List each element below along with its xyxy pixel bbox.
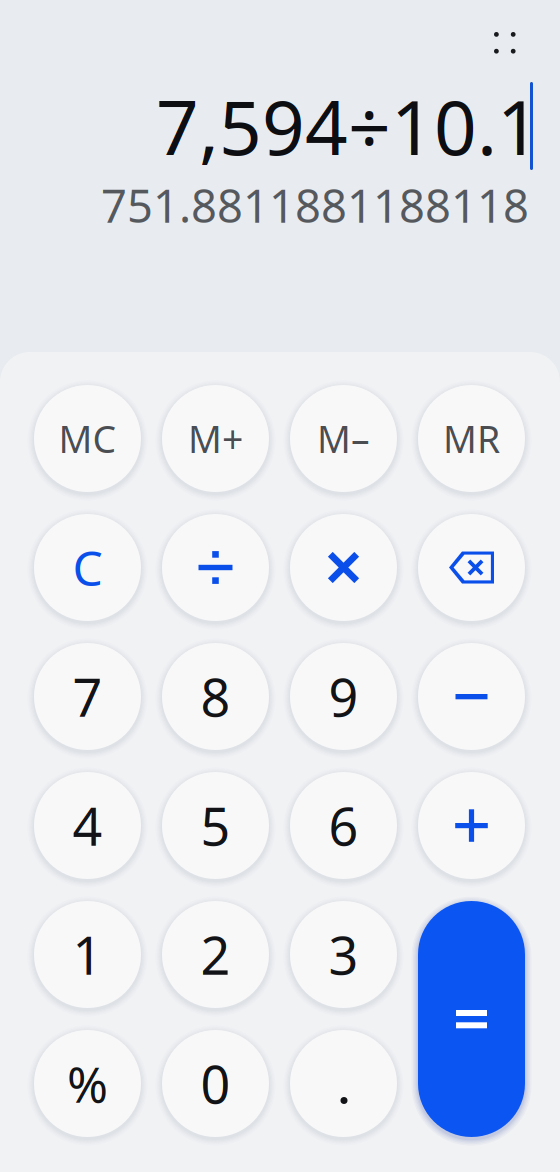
staticText: 3 — [328, 920, 358, 989]
button[interactable]: 8 — [162, 643, 269, 750]
staticText: 8 — [200, 662, 230, 731]
staticText: C — [72, 536, 102, 599]
staticText: 4 — [72, 791, 102, 860]
button[interactable]: 9 — [290, 643, 397, 750]
button[interactable]: 5 — [162, 772, 269, 879]
button[interactable]: Backspace — [418, 514, 525, 621]
button[interactable]: MC — [34, 385, 141, 492]
button[interactable]: 7 — [34, 643, 141, 750]
button[interactable]: C — [34, 514, 141, 621]
staticText: % — [67, 1051, 108, 1116]
button[interactable]: Equals — [418, 901, 525, 1137]
staticText: MC — [58, 414, 116, 463]
button[interactable]: % — [34, 1030, 141, 1137]
button[interactable]: Divide — [162, 514, 269, 621]
button[interactable]: History — [483, 21, 527, 65]
staticText: 1 — [72, 920, 102, 989]
button[interactable]: 2 — [162, 901, 269, 1008]
button[interactable]: Decimal point — [290, 1030, 397, 1137]
staticText: 9 — [328, 662, 358, 731]
button[interactable]: 0 — [162, 1030, 269, 1137]
button[interactable]: 6 — [290, 772, 397, 879]
button[interactable]: Plus — [418, 772, 525, 879]
staticText: 2 — [200, 920, 230, 989]
button[interactable]: MR — [418, 385, 525, 492]
button[interactable]: 3 — [290, 901, 397, 1008]
button[interactable]: 4 — [34, 772, 141, 879]
staticText: M+ — [188, 414, 243, 463]
staticText: 0 — [200, 1049, 230, 1118]
button[interactable]: M+ — [162, 385, 269, 492]
staticText: 5 — [200, 791, 230, 860]
staticText: 7,594÷10.1 — [156, 76, 540, 176]
button[interactable]: M– — [290, 385, 397, 492]
button[interactable]: 1 — [34, 901, 141, 1008]
staticText: MR — [443, 414, 500, 463]
staticText: 751.8811881188118 — [101, 175, 529, 235]
staticText: 6 — [328, 791, 358, 860]
button[interactable]: Multiply — [290, 514, 397, 621]
button[interactable]: Minus — [418, 643, 525, 750]
staticText: M– — [317, 414, 370, 463]
staticText: 7 — [72, 662, 102, 731]
